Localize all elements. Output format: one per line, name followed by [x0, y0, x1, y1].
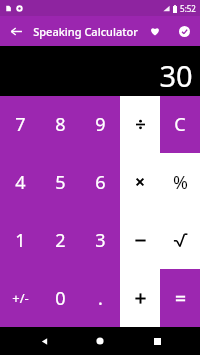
staticText: Speaking Calculator — [33, 24, 138, 39]
staticText: 5:52 — [180, 3, 196, 14]
staticText: 9 — [95, 112, 106, 137]
button[interactable]: Recents — [144, 328, 170, 354]
button[interactable]: 6 — [80, 153, 120, 211]
button[interactable] — [120, 269, 160, 327]
button[interactable]: +/- — [0, 269, 40, 327]
button[interactable]: 3 — [80, 211, 120, 269]
staticText: 2 — [55, 228, 66, 253]
button[interactable]: 1 — [0, 211, 40, 269]
staticText: 4 — [15, 170, 26, 195]
staticText: 8 — [55, 112, 66, 137]
button[interactable]: C — [160, 96, 200, 153]
staticText: 7 — [15, 112, 26, 137]
button[interactable] — [160, 269, 200, 327]
button[interactable]: 0 — [40, 269, 80, 327]
staticText: 0 — [55, 286, 66, 311]
button[interactable]: 9 — [80, 96, 120, 153]
staticText: 1 — [15, 228, 26, 253]
button[interactable]: 5 — [40, 153, 80, 211]
button[interactable] — [120, 153, 160, 211]
staticText: . — [98, 286, 103, 311]
button[interactable]: Back — [31, 328, 57, 354]
button[interactable]: % — [160, 153, 200, 211]
button[interactable]: . — [80, 269, 120, 327]
button[interactable]: Back — [5, 20, 27, 42]
staticText: % — [173, 170, 188, 195]
staticText: 30 — [159, 56, 193, 95]
button[interactable]: Favorite — [146, 22, 164, 40]
button[interactable] — [160, 211, 200, 269]
button[interactable]: 2 — [40, 211, 80, 269]
button[interactable]: 4 — [0, 153, 40, 211]
staticText: 5 — [55, 170, 66, 195]
staticText: 3 — [95, 228, 106, 253]
staticText: 6 — [95, 170, 106, 195]
staticText: C — [174, 112, 186, 137]
button[interactable] — [120, 96, 160, 153]
staticText: +/- — [12, 289, 29, 307]
button[interactable] — [120, 211, 160, 269]
button[interactable]: Verified — [175, 22, 193, 40]
button[interactable]: Home — [87, 328, 113, 354]
button[interactable]: 7 — [0, 96, 40, 153]
button[interactable]: 8 — [40, 96, 80, 153]
